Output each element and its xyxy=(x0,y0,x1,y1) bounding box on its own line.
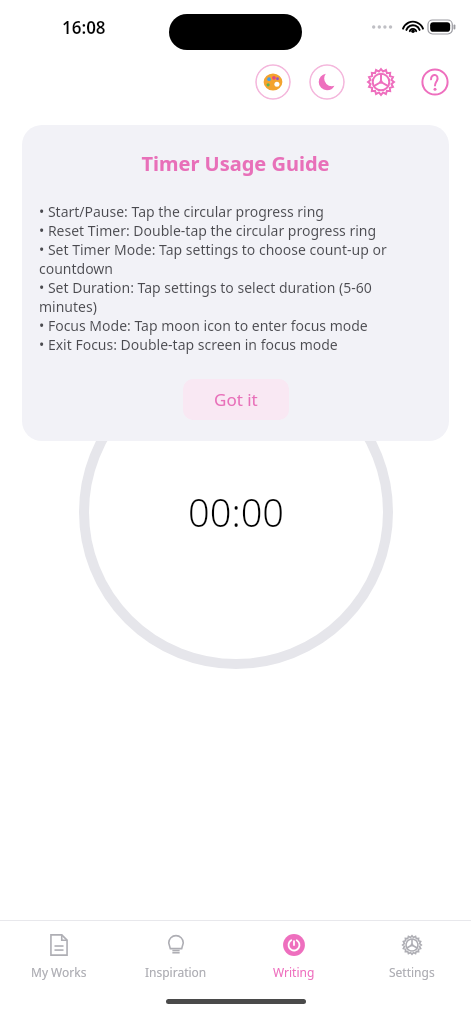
button[interactable]: Writing xyxy=(235,928,353,984)
button[interactable]: Theme xyxy=(255,64,291,100)
button[interactable] xyxy=(79,355,393,669)
button[interactable]: Help xyxy=(417,64,453,100)
button[interactable]: Settings xyxy=(353,928,471,984)
staticText: Timer Usage Guide xyxy=(39,150,432,177)
staticText: 00:00 xyxy=(188,486,285,538)
button[interactable]: Settings xyxy=(363,64,399,100)
button[interactable]: Focus mode xyxy=(309,64,345,100)
button[interactable]: Got it xyxy=(183,379,289,420)
staticText: Writing xyxy=(273,964,315,980)
button[interactable]: My Works xyxy=(0,928,117,984)
staticText: Inspiration xyxy=(145,964,207,980)
staticText: • Start/Pause: Tap the circular progress… xyxy=(39,202,432,354)
button[interactable]: Inspiration xyxy=(117,928,235,984)
staticText: My Works xyxy=(31,964,87,980)
staticText: Settings xyxy=(389,964,435,980)
staticText: 16:08 xyxy=(62,16,106,39)
staticText: Got it xyxy=(214,388,258,411)
